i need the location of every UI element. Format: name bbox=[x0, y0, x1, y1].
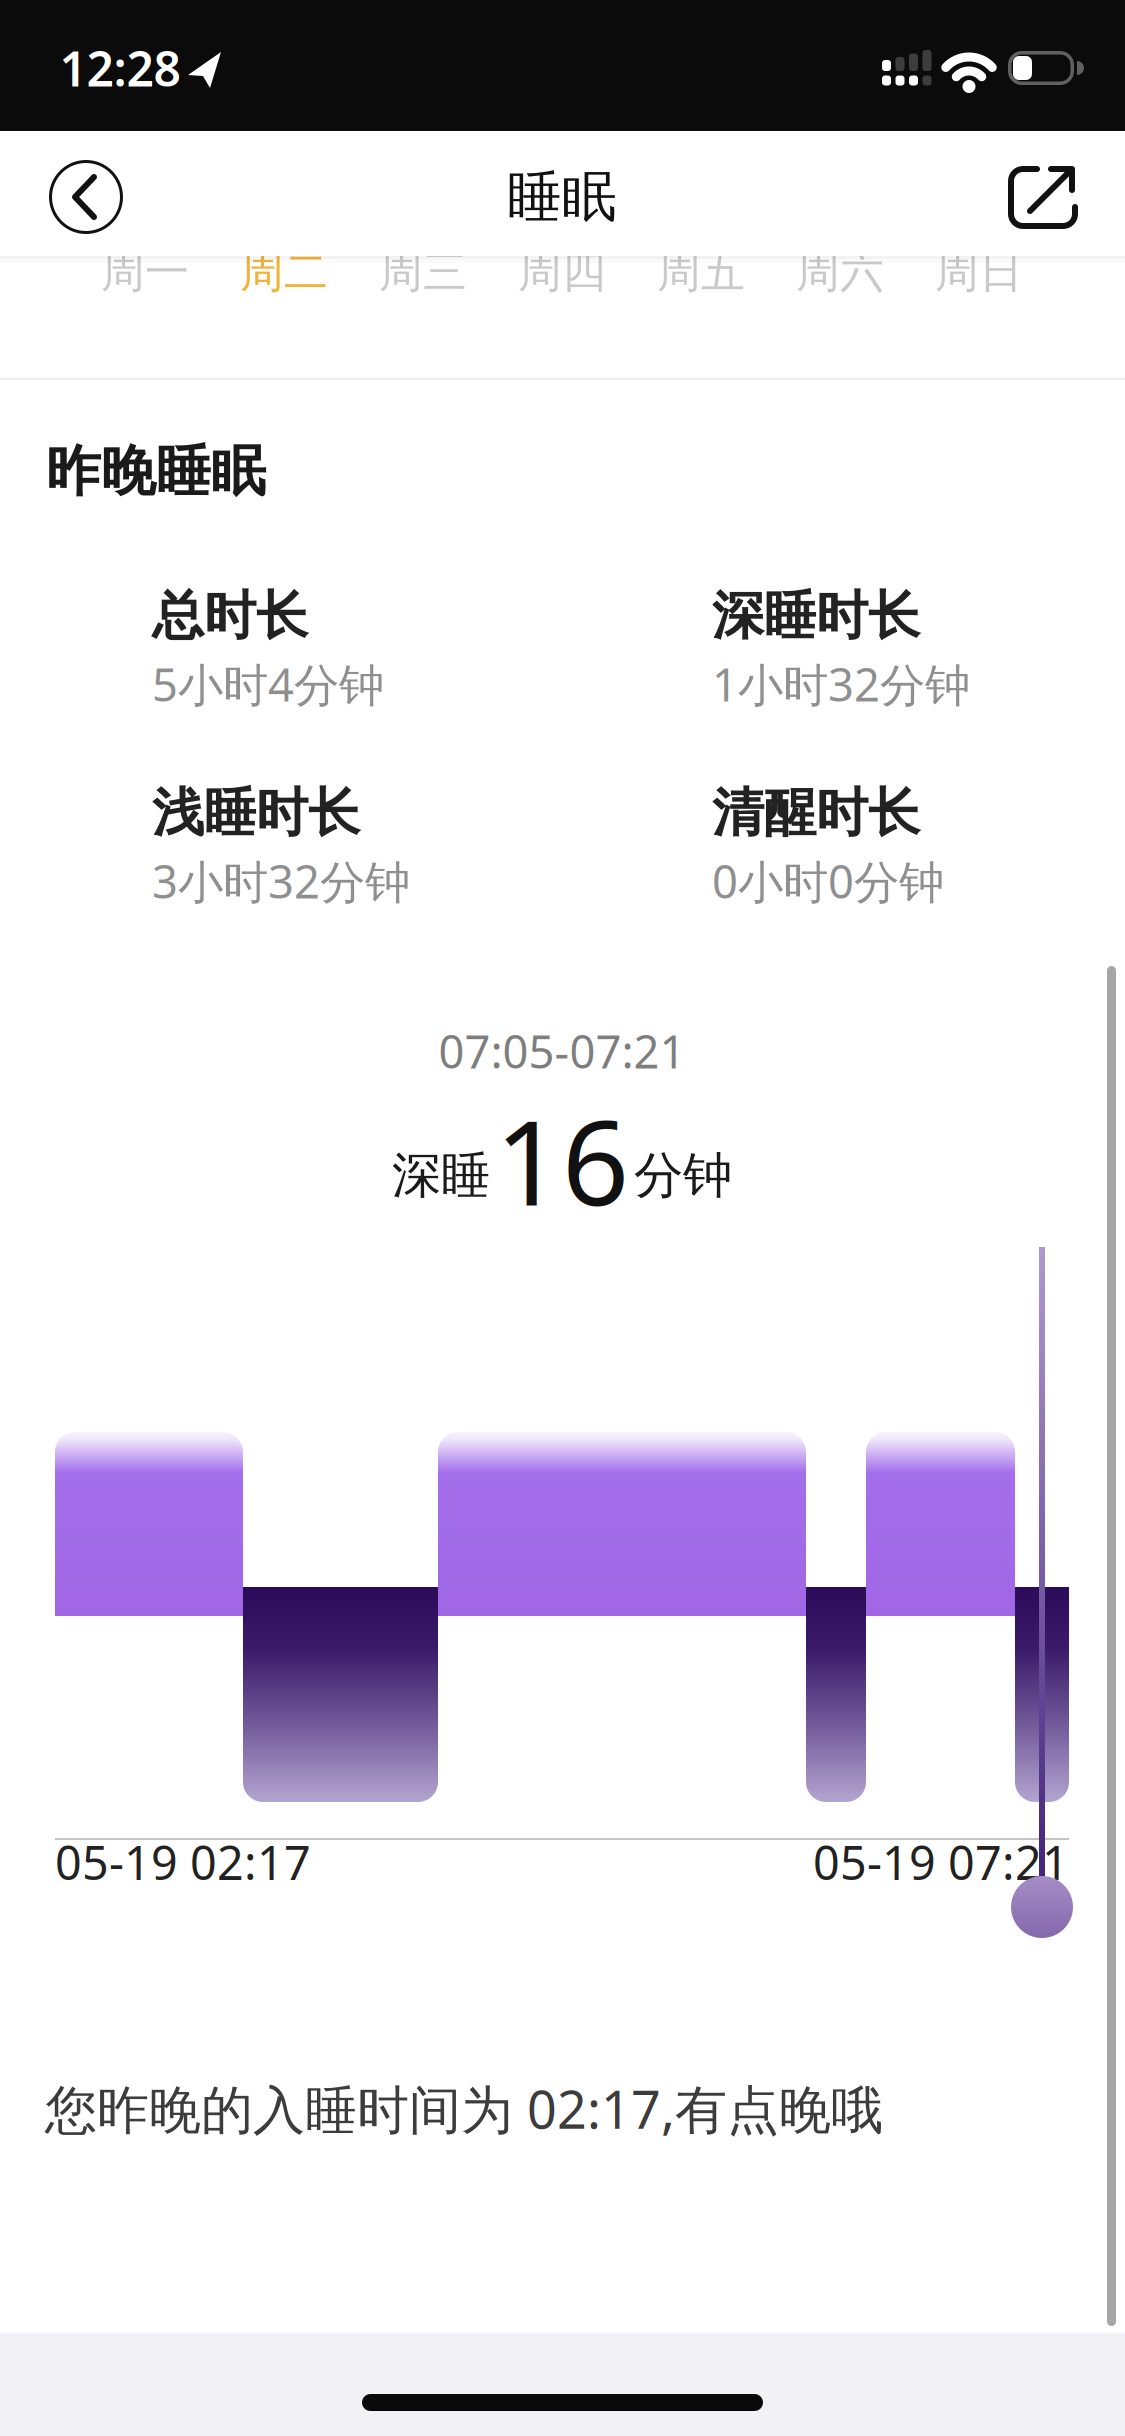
staticText: 睡眠 bbox=[507, 163, 617, 230]
button[interactable] bbox=[49, 160, 123, 234]
staticText: 昨晚睡眠 bbox=[46, 438, 266, 505]
staticText: 周六 bbox=[796, 245, 884, 299]
button[interactable]: 周三 bbox=[358, 232, 488, 312]
staticText: 5小时4分钟 bbox=[152, 654, 384, 714]
staticText: 3小时32分钟 bbox=[152, 851, 410, 911]
staticText: 深睡 bbox=[392, 1145, 490, 1206]
staticText: 您昨晚的入睡时间为 02:17,有点晚哦 bbox=[45, 2074, 883, 2143]
staticText: 深睡时长 bbox=[712, 584, 920, 648]
button[interactable]: 周五 bbox=[636, 232, 766, 312]
button[interactable]: 周四 bbox=[497, 232, 627, 312]
button[interactable] bbox=[1006, 160, 1080, 234]
staticText: 1小时32分钟 bbox=[712, 654, 970, 714]
staticText: 16 bbox=[495, 1082, 629, 1238]
staticText: 05-19 07:21 bbox=[813, 1831, 1069, 1893]
staticText: 05-19 02:17 bbox=[55, 1831, 311, 1893]
staticText: 周一 bbox=[101, 245, 189, 299]
staticText: 分钟 bbox=[634, 1145, 732, 1206]
staticText: 0小时0分钟 bbox=[712, 851, 944, 911]
staticText: 浅睡时长 bbox=[152, 781, 360, 845]
button[interactable]: 周六 bbox=[775, 232, 905, 312]
staticText: 总时长 bbox=[152, 584, 308, 648]
staticText: 周二 bbox=[240, 245, 328, 299]
staticText: 12:28 bbox=[59, 36, 180, 100]
button[interactable]: 周日 bbox=[914, 232, 1044, 312]
button[interactable]: 周一 bbox=[80, 232, 210, 312]
staticText: 周五 bbox=[657, 245, 745, 299]
staticText: 07:05-07:21 bbox=[438, 1021, 685, 1081]
staticText: 周日 bbox=[935, 245, 1023, 299]
staticText: 周四 bbox=[518, 245, 606, 299]
staticText: 清醒时长 bbox=[712, 781, 920, 845]
staticText: 周三 bbox=[379, 245, 467, 299]
button[interactable]: 周二 bbox=[219, 232, 349, 312]
